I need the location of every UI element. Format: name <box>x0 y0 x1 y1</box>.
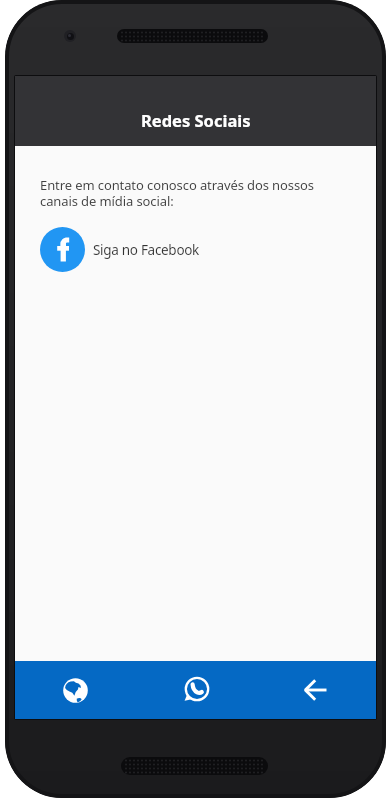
staticText: Siga no Facebook <box>93 241 200 259</box>
button[interactable] <box>15 661 136 719</box>
button[interactable] <box>136 661 256 719</box>
staticText: Redes Sociais <box>141 109 251 131</box>
staticText: Entre em contato conosco através dos nos… <box>40 176 314 210</box>
button[interactable] <box>256 661 376 719</box>
button[interactable]: Siga no Facebook <box>40 227 200 272</box>
